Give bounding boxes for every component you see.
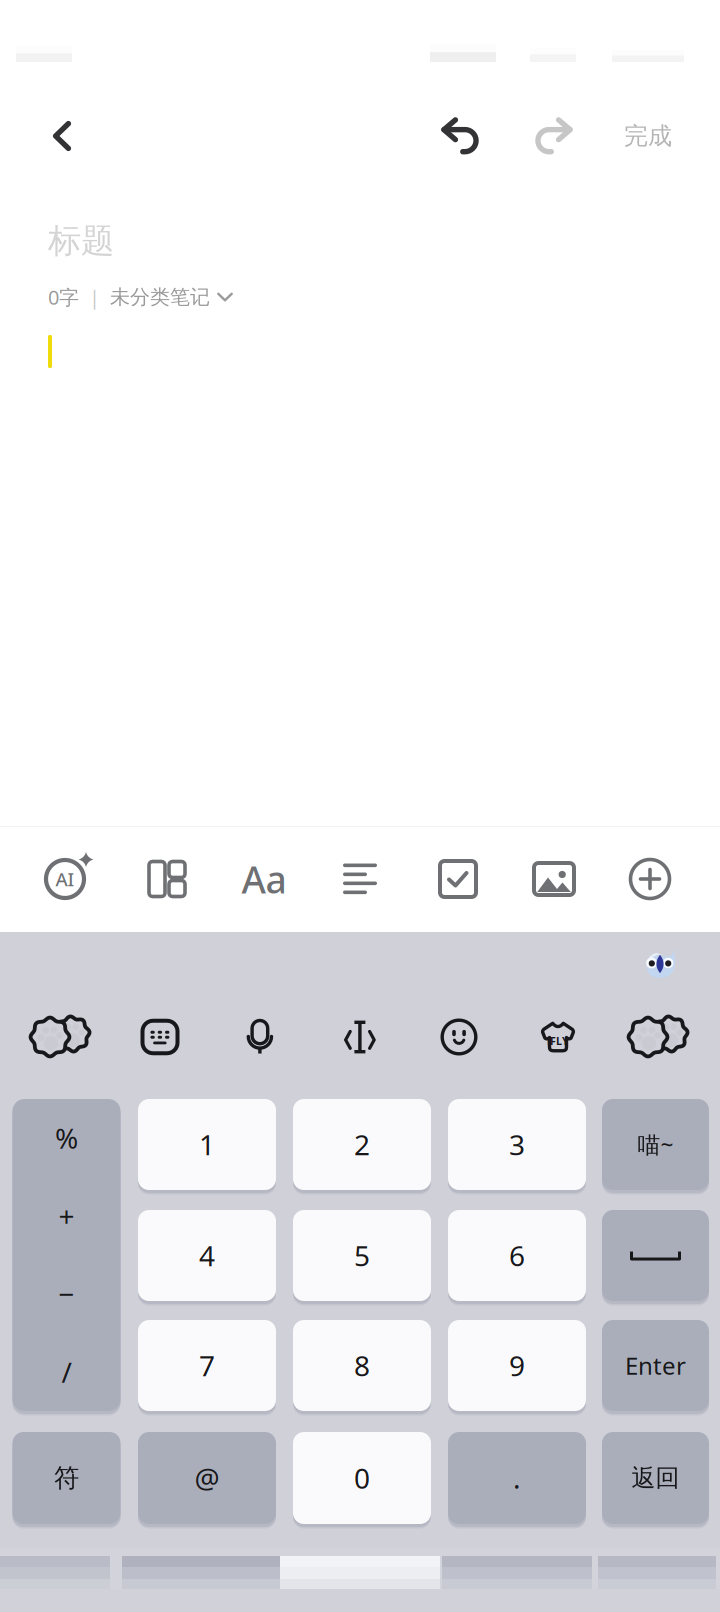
- staticText: 0字: [48, 284, 79, 310]
- button[interactable]: 0: [293, 1432, 431, 1524]
- button[interactable]: 未分类笔记: [110, 285, 233, 309]
- staticText: 标题: [48, 220, 114, 261]
- button[interactable]: Redo: [522, 102, 586, 170]
- button[interactable]: Enter: [602, 1320, 709, 1411]
- staticText: 返回: [631, 1463, 679, 1493]
- staticText: 4: [199, 1237, 215, 1274]
- button[interactable]: Move cursor: [312, 1002, 408, 1072]
- button[interactable]: 6: [448, 1210, 586, 1301]
- staticText: Aa: [241, 854, 286, 904]
- staticText: .: [513, 1459, 521, 1497]
- staticText: 0: [354, 1459, 370, 1497]
- button[interactable]: More: [603, 826, 697, 932]
- staticText: @: [194, 1459, 219, 1497]
- staticText: 2: [354, 1126, 370, 1163]
- button[interactable]: Stickers: [12, 1002, 108, 1072]
- staticText: 喵~: [637, 1129, 673, 1159]
- staticText: 6: [509, 1237, 525, 1274]
- staticText: 8: [354, 1347, 370, 1384]
- button[interactable]: 符: [12, 1432, 120, 1524]
- staticText: /: [61, 1353, 71, 1391]
- button[interactable]: Voice input: [212, 1002, 308, 1072]
- button[interactable]: Back: [30, 102, 94, 170]
- button[interactable]: Insert photo: [507, 826, 601, 932]
- button[interactable]: 4: [138, 1210, 276, 1301]
- staticText: +: [58, 1197, 74, 1235]
- staticText: −: [58, 1275, 74, 1313]
- button[interactable]: Operators: [12, 1099, 120, 1411]
- button[interactable]: 5: [293, 1210, 431, 1301]
- button[interactable]: Templates: [120, 826, 214, 932]
- button[interactable]: @: [138, 1432, 276, 1524]
- button[interactable]: 3: [448, 1099, 586, 1190]
- staticText: 9: [509, 1347, 525, 1384]
- button[interactable]: 7: [138, 1320, 276, 1411]
- staticText: 5: [354, 1237, 370, 1274]
- staticText: 完成: [624, 121, 672, 151]
- button[interactable]: 喵~: [602, 1099, 709, 1190]
- button[interactable]: 1: [138, 1099, 276, 1190]
- button[interactable]: Stickers: [610, 1002, 706, 1072]
- staticText: 1: [199, 1126, 215, 1163]
- staticText: |: [79, 284, 110, 310]
- button[interactable]: Paragraph: [313, 826, 407, 932]
- button[interactable]: Emoji: [411, 1002, 507, 1072]
- staticText: 符: [54, 1462, 79, 1493]
- button[interactable]: 9: [448, 1320, 586, 1411]
- staticText: iFLY: [547, 1034, 569, 1048]
- staticText: 3: [509, 1126, 525, 1163]
- button[interactable]: Undo: [428, 102, 492, 170]
- staticText: 未分类笔记: [110, 285, 210, 309]
- button[interactable]: Theme: [510, 1002, 606, 1072]
- staticText: 7: [199, 1347, 215, 1384]
- button[interactable]: Space: [602, 1210, 709, 1301]
- staticText: AI: [55, 867, 74, 891]
- button[interactable]: AI assist: [23, 826, 117, 932]
- button[interactable]: 返回: [602, 1432, 709, 1524]
- button[interactable]: Checklist: [411, 826, 505, 932]
- staticText: %: [55, 1119, 78, 1157]
- staticText: Enter: [625, 1350, 686, 1381]
- button[interactable]: Keyboard layout: [112, 1002, 208, 1072]
- button[interactable]: 8: [293, 1320, 431, 1411]
- button[interactable]: Text style: [217, 826, 311, 932]
- button[interactable]: .: [448, 1432, 586, 1524]
- button[interactable]: 完成: [605, 102, 691, 170]
- button[interactable]: 2: [293, 1099, 431, 1190]
